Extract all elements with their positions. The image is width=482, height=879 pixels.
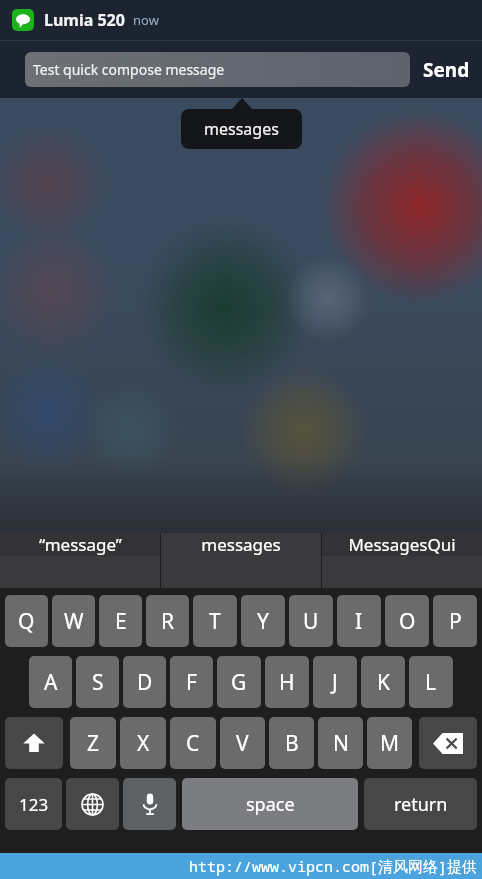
staticText: F [186,668,197,697]
button[interactable]: M [367,717,412,769]
button[interactable]: R [146,595,189,647]
staticText: return [394,792,448,817]
button[interactable]: MessagesQui [322,533,482,556]
button[interactable]: I [337,595,381,647]
staticText: N [333,729,349,758]
staticText: now [133,11,159,29]
staticText: Y [257,607,269,636]
staticText: I [355,607,363,636]
button[interactable]: Backspace [419,717,477,769]
staticText: space [246,792,295,817]
button[interactable]: LINE [0,0,482,40]
button[interactable]: H [265,656,309,708]
button[interactable]: Send [410,48,482,92]
button[interactable]: E [99,595,142,647]
button[interactable]: Q [5,595,48,647]
staticText: S [92,668,104,697]
button[interactable]: T [193,595,237,647]
staticText: L [425,668,437,697]
button[interactable]: Shift [5,717,63,769]
staticText: J [332,668,338,697]
button[interactable]: F [170,656,213,708]
staticText: Test quick compose message [33,60,225,79]
staticText: D [137,668,153,697]
button[interactable]: K [361,656,405,708]
staticText: O [399,607,416,636]
staticText: Lumia 520 [44,9,125,31]
button[interactable]: Z [70,717,116,769]
button[interactable]: S [76,656,119,708]
button[interactable]: C [170,717,216,769]
button[interactable]: return [364,778,477,830]
other: LINE [12,9,34,31]
staticText: R [161,607,175,636]
button[interactable]: space [182,778,358,830]
button[interactable]: Y [241,595,285,647]
button[interactable]: D [123,656,166,708]
staticText: messages [204,118,279,140]
button[interactable]: 123 [5,778,62,830]
button[interactable]: V [220,717,265,769]
staticText: W [64,607,84,636]
button[interactable]: X [120,717,166,769]
button[interactable]: G [217,656,261,708]
button[interactable]: messages [181,109,302,149]
button[interactable]: “message” [0,533,160,556]
staticText: G [231,668,247,697]
button[interactable]: L [409,656,453,708]
staticText: T [209,607,221,636]
button[interactable]: Test quick compose message [25,52,410,87]
button[interactable]: Dictation [123,778,176,830]
button[interactable]: messages [161,533,321,556]
staticText: “message” [39,533,122,556]
staticText: H [279,668,295,697]
button[interactable]: O [385,595,429,647]
staticText: http://www.vipcn.com[清风网络]提供 [189,856,478,876]
staticText: E [115,607,127,636]
staticText: A [44,668,58,697]
staticText: C [186,729,200,758]
staticText: messages [201,533,281,556]
staticText: Q [18,607,35,636]
button[interactable]: P [433,595,477,647]
button[interactable]: Change keyboard language [66,778,119,830]
staticText: 123 [19,793,49,816]
button[interactable]: A [29,656,72,708]
button[interactable]: J [313,656,357,708]
staticText: K [377,668,390,697]
button[interactable]: W [52,595,95,647]
staticText: V [236,729,249,758]
staticText: X [137,729,150,758]
staticText: M [380,729,400,758]
staticText: U [303,607,319,636]
staticText: MessagesQui [348,533,456,556]
staticText: B [285,729,299,758]
staticText: P [449,607,462,636]
button[interactable]: N [318,717,363,769]
button[interactable]: B [269,717,314,769]
staticText: Z [87,729,100,758]
staticText: Send [423,57,470,83]
button[interactable]: U [289,595,333,647]
